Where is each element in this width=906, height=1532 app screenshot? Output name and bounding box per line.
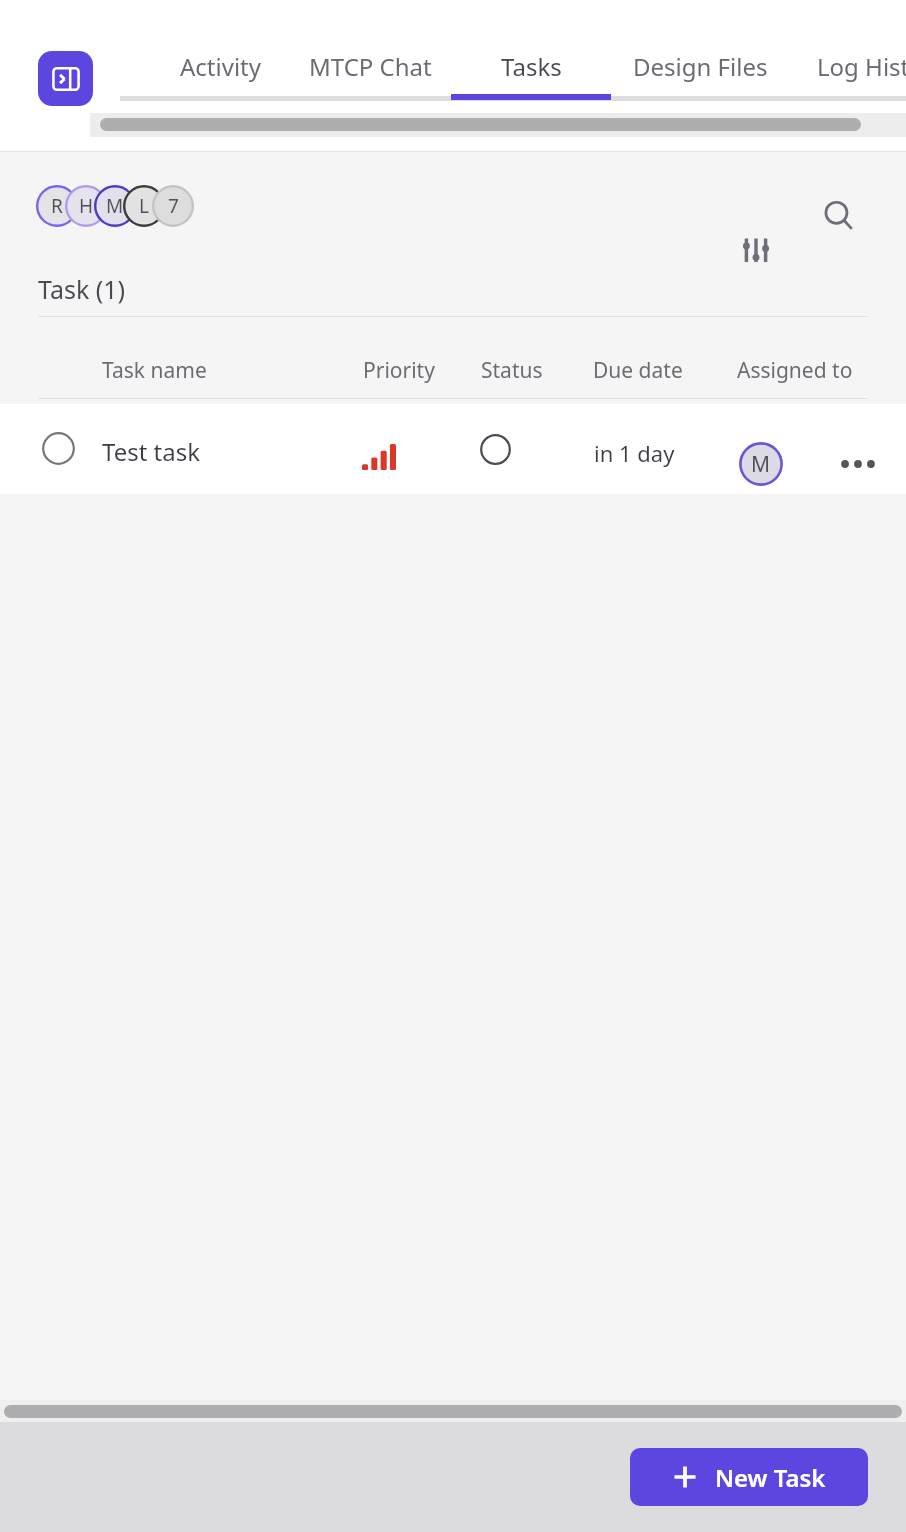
staticText: Activity — [180, 50, 261, 83]
staticText: M — [106, 193, 124, 219]
button[interactable]: Design Files — [620, 36, 780, 96]
staticText: L — [139, 193, 149, 219]
button[interactable]: L — [123, 185, 165, 227]
button[interactable]: Toggle sidebar — [38, 51, 93, 106]
button[interactable]: H — [65, 185, 107, 227]
staticText: Test task — [102, 435, 201, 468]
button[interactable]: MTCP Chat — [290, 36, 450, 96]
button[interactable]: Filter — [728, 224, 784, 280]
button[interactable]: Complete task — [0, 404, 906, 494]
staticText: Task (1) — [38, 272, 126, 306]
button[interactable]: Tasks — [451, 36, 611, 96]
staticText: Log Histo — [817, 50, 906, 83]
staticText: MTCP Chat — [309, 50, 432, 83]
staticText: Status — [481, 356, 543, 385]
staticText: New Task — [715, 1461, 826, 1494]
staticText: Tasks — [501, 50, 562, 83]
button[interactable]: Log Histo — [800, 36, 906, 96]
button[interactable]: M — [94, 185, 136, 227]
button[interactable]: More options — [834, 440, 882, 488]
staticText: M — [751, 450, 771, 479]
staticText: H — [79, 193, 94, 219]
button[interactable]: Activity — [140, 36, 300, 96]
staticText: Assigned to — [737, 356, 853, 385]
button[interactable]: Complete task — [42, 432, 75, 465]
staticText: Design Files — [633, 50, 768, 83]
staticText: Priority — [363, 356, 435, 385]
button[interactable]: Priority high — [362, 444, 396, 470]
button[interactable]: R — [36, 185, 78, 227]
button[interactable]: Assignee M — [739, 442, 783, 486]
button[interactable]: New Task — [630, 1448, 868, 1506]
staticText: in 1 day — [594, 438, 675, 468]
button[interactable]: Status — [480, 434, 511, 465]
button[interactable]: 7 — [152, 185, 194, 227]
staticText: Task name — [102, 356, 207, 385]
staticText: Due date — [593, 356, 683, 385]
button[interactable]: Search — [811, 188, 867, 244]
staticText: R — [51, 193, 63, 219]
staticText: 7 — [168, 193, 179, 219]
